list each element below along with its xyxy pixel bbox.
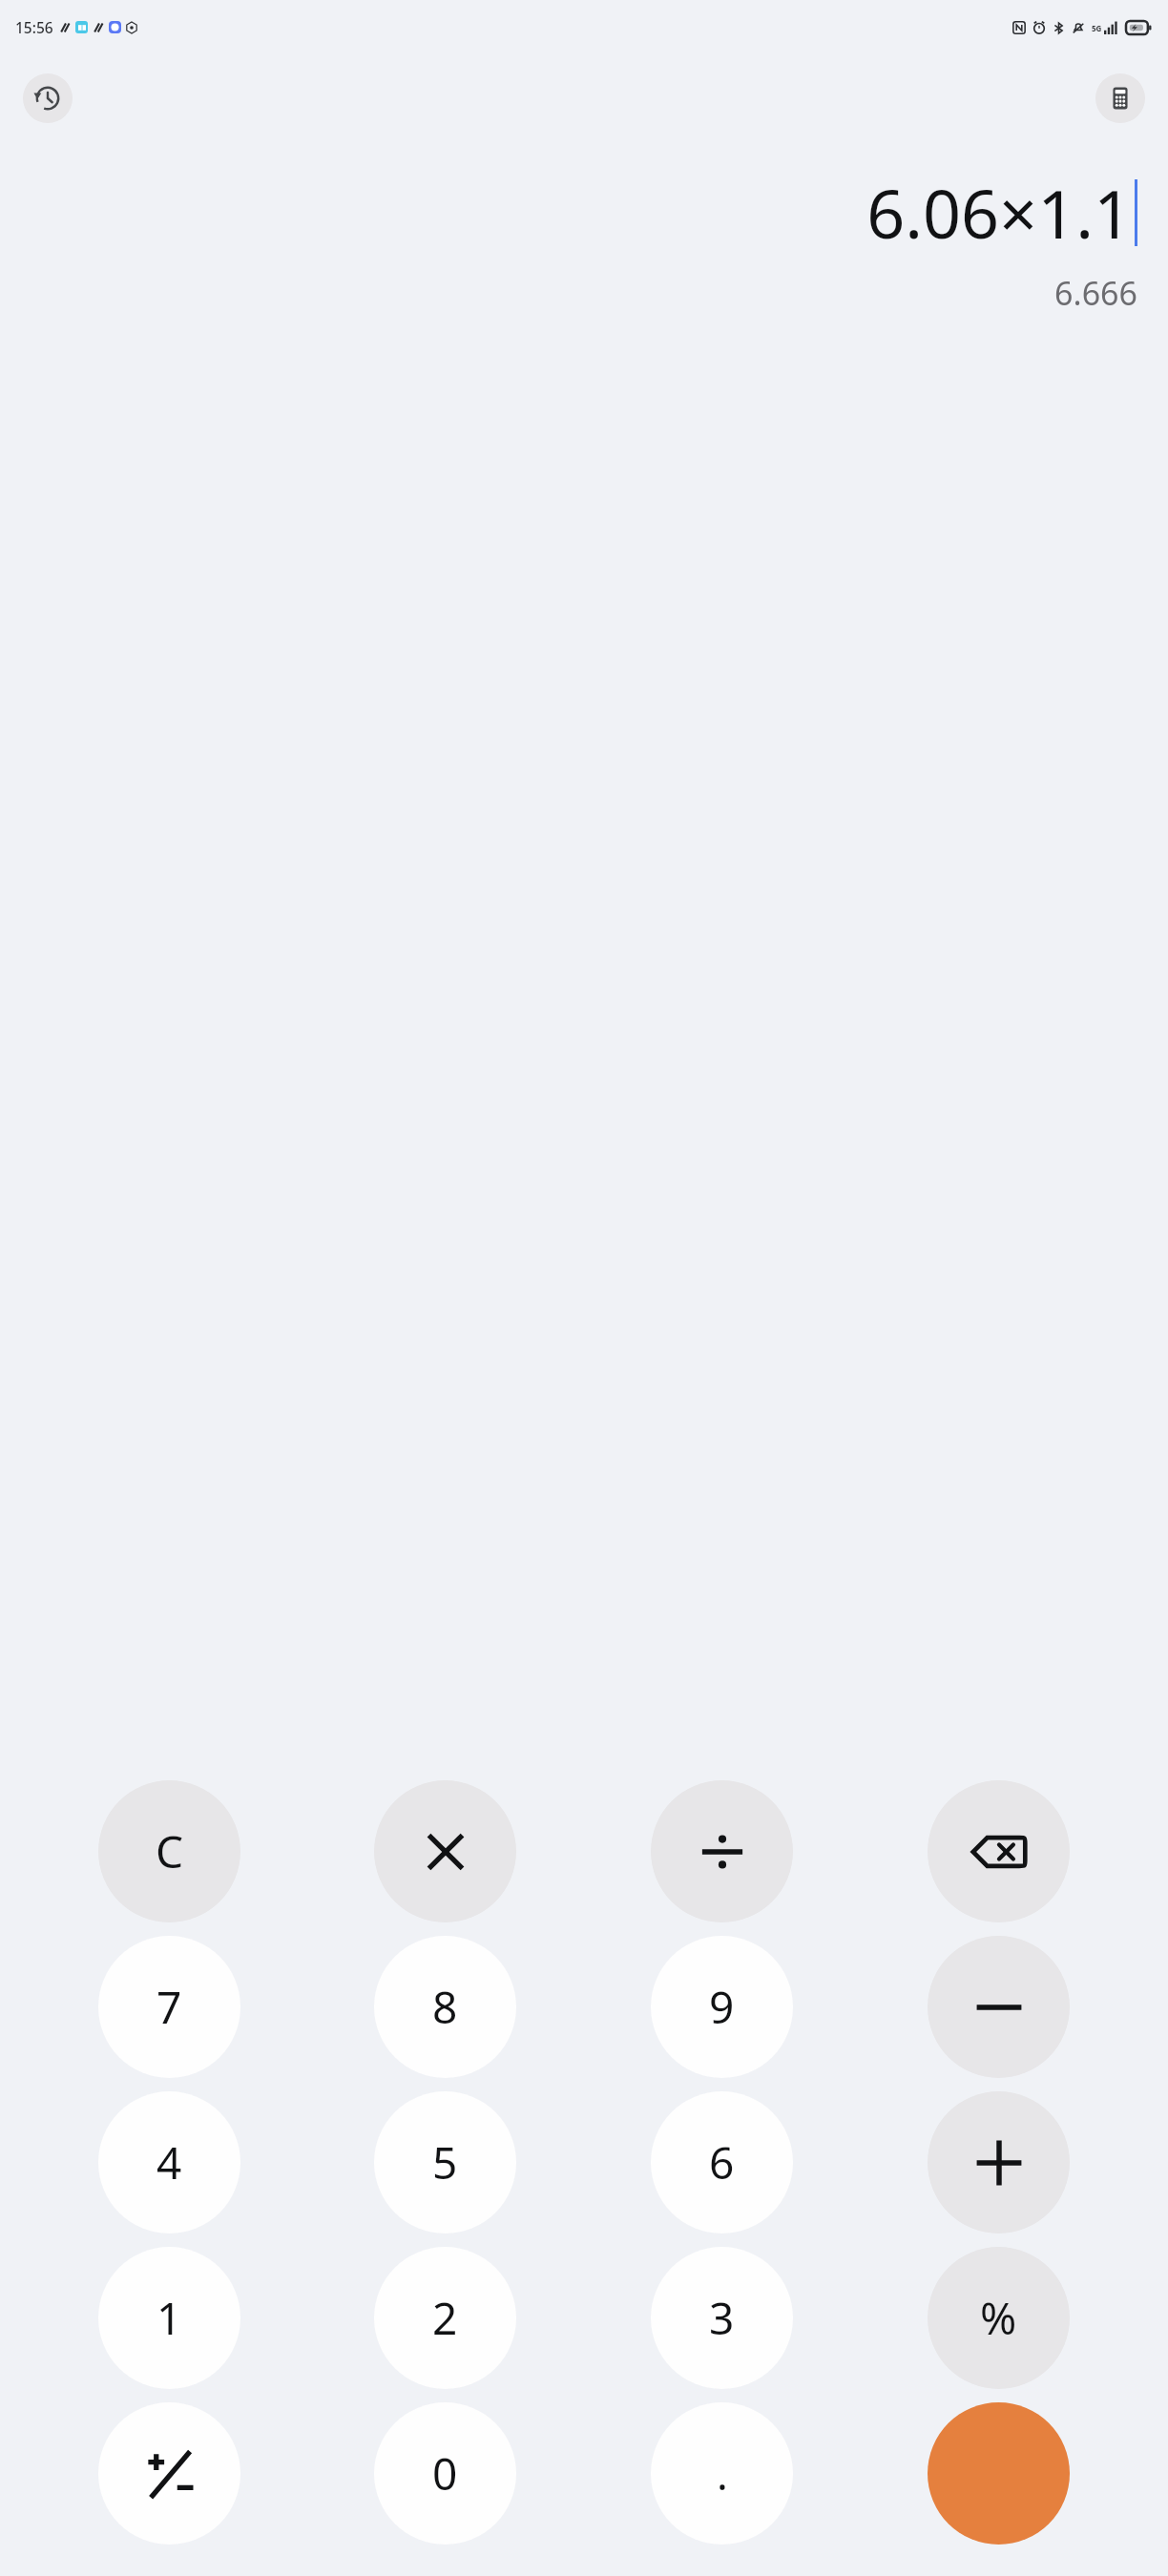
button[interactable]: .: [651, 2402, 793, 2545]
button[interactable]: 8: [374, 1936, 516, 2078]
staticText: 9: [709, 1977, 735, 2037]
button[interactable]: Equals: [928, 2402, 1070, 2545]
button[interactable]: 2: [374, 2247, 516, 2389]
button[interactable]: 1: [98, 2247, 240, 2389]
staticText: %: [980, 2288, 1017, 2348]
staticText: 7: [156, 1977, 182, 2037]
button[interactable]: 9: [651, 1936, 793, 2078]
button[interactable]: 3: [651, 2247, 793, 2389]
button[interactable]: History: [23, 73, 73, 123]
button[interactable]: Calculator mode: [1095, 73, 1145, 123]
button[interactable]: 0: [374, 2402, 516, 2545]
staticText: 15:56: [15, 17, 53, 37]
button[interactable]: Backspace: [928, 1780, 1070, 1922]
staticText: 6.666: [1054, 271, 1137, 315]
staticText: C: [156, 1821, 184, 1881]
staticText: 5: [432, 2132, 458, 2192]
button[interactable]: C: [98, 1780, 240, 1922]
button[interactable]: 7: [98, 1936, 240, 2078]
staticText: 5G: [1092, 23, 1102, 33]
staticText: 3: [709, 2288, 735, 2348]
button[interactable]: [651, 1780, 793, 1922]
button[interactable]: Plus minus: [98, 2402, 240, 2545]
button[interactable]: [928, 2091, 1070, 2233]
staticText: 4: [156, 2132, 182, 2192]
button[interactable]: 5: [374, 2091, 516, 2233]
staticText: .: [717, 2445, 728, 2503]
button[interactable]: %: [928, 2247, 1070, 2389]
button[interactable]: [928, 1936, 1070, 2078]
staticText: 2: [432, 2288, 458, 2348]
button[interactable]: 4: [98, 2091, 240, 2233]
staticText: 6.06×1.1: [866, 167, 1132, 258]
button[interactable]: [374, 1780, 516, 1922]
staticText: 6: [709, 2132, 735, 2192]
button[interactable]: 6: [651, 2091, 793, 2233]
staticText: 0: [432, 2443, 458, 2503]
staticText: 8: [432, 1977, 458, 2037]
staticText: 1: [156, 2288, 182, 2348]
